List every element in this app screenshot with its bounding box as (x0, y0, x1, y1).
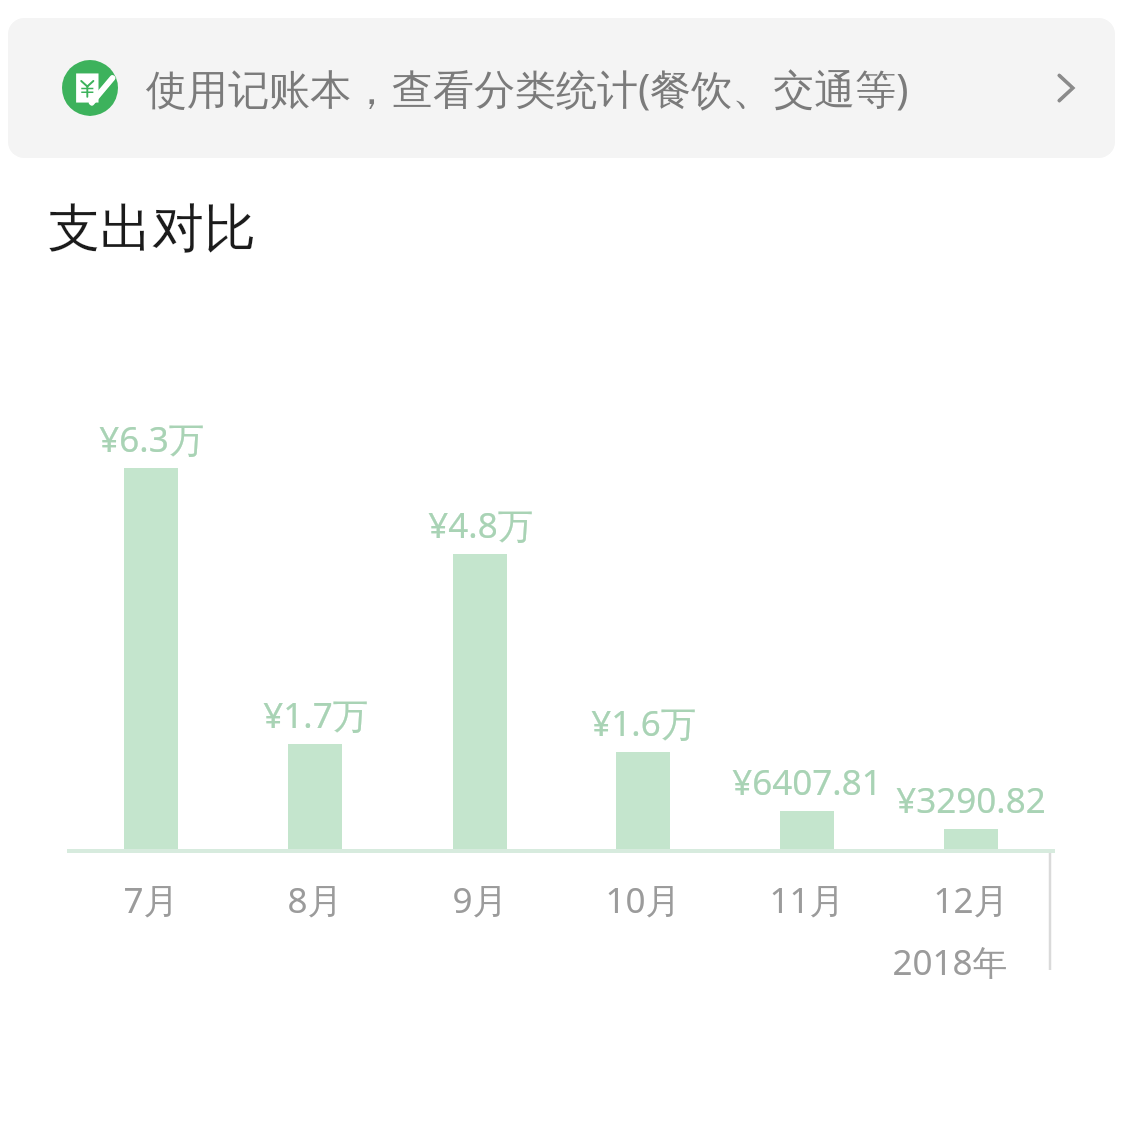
staticText: 10月 (605, 876, 681, 924)
staticText: 11月 (769, 876, 845, 924)
staticText: 9月 (452, 876, 508, 924)
staticText: ¥3290.82 (896, 776, 1046, 824)
staticText: 支出对比 (48, 196, 256, 262)
staticText: 2018年 (892, 938, 1008, 986)
staticText: ¥4.8万 (428, 501, 533, 549)
staticText: ¥1.7万 (263, 691, 368, 739)
button[interactable]: 查看分类统计 (1033, 56, 1097, 120)
staticText: 使用记账本，查看分类统计(餐饮、交通等) (146, 60, 909, 116)
staticText: 7月 (123, 876, 179, 924)
button[interactable]: 使用记账本，查看分类统计(餐饮、交通等) (8, 18, 1115, 158)
staticText: 12月 (933, 876, 1009, 924)
staticText: ¥6.3万 (99, 415, 204, 463)
staticText: 8月 (287, 876, 343, 924)
staticText: ¥6407.81 (732, 758, 882, 806)
staticText: ¥1.6万 (591, 699, 696, 747)
